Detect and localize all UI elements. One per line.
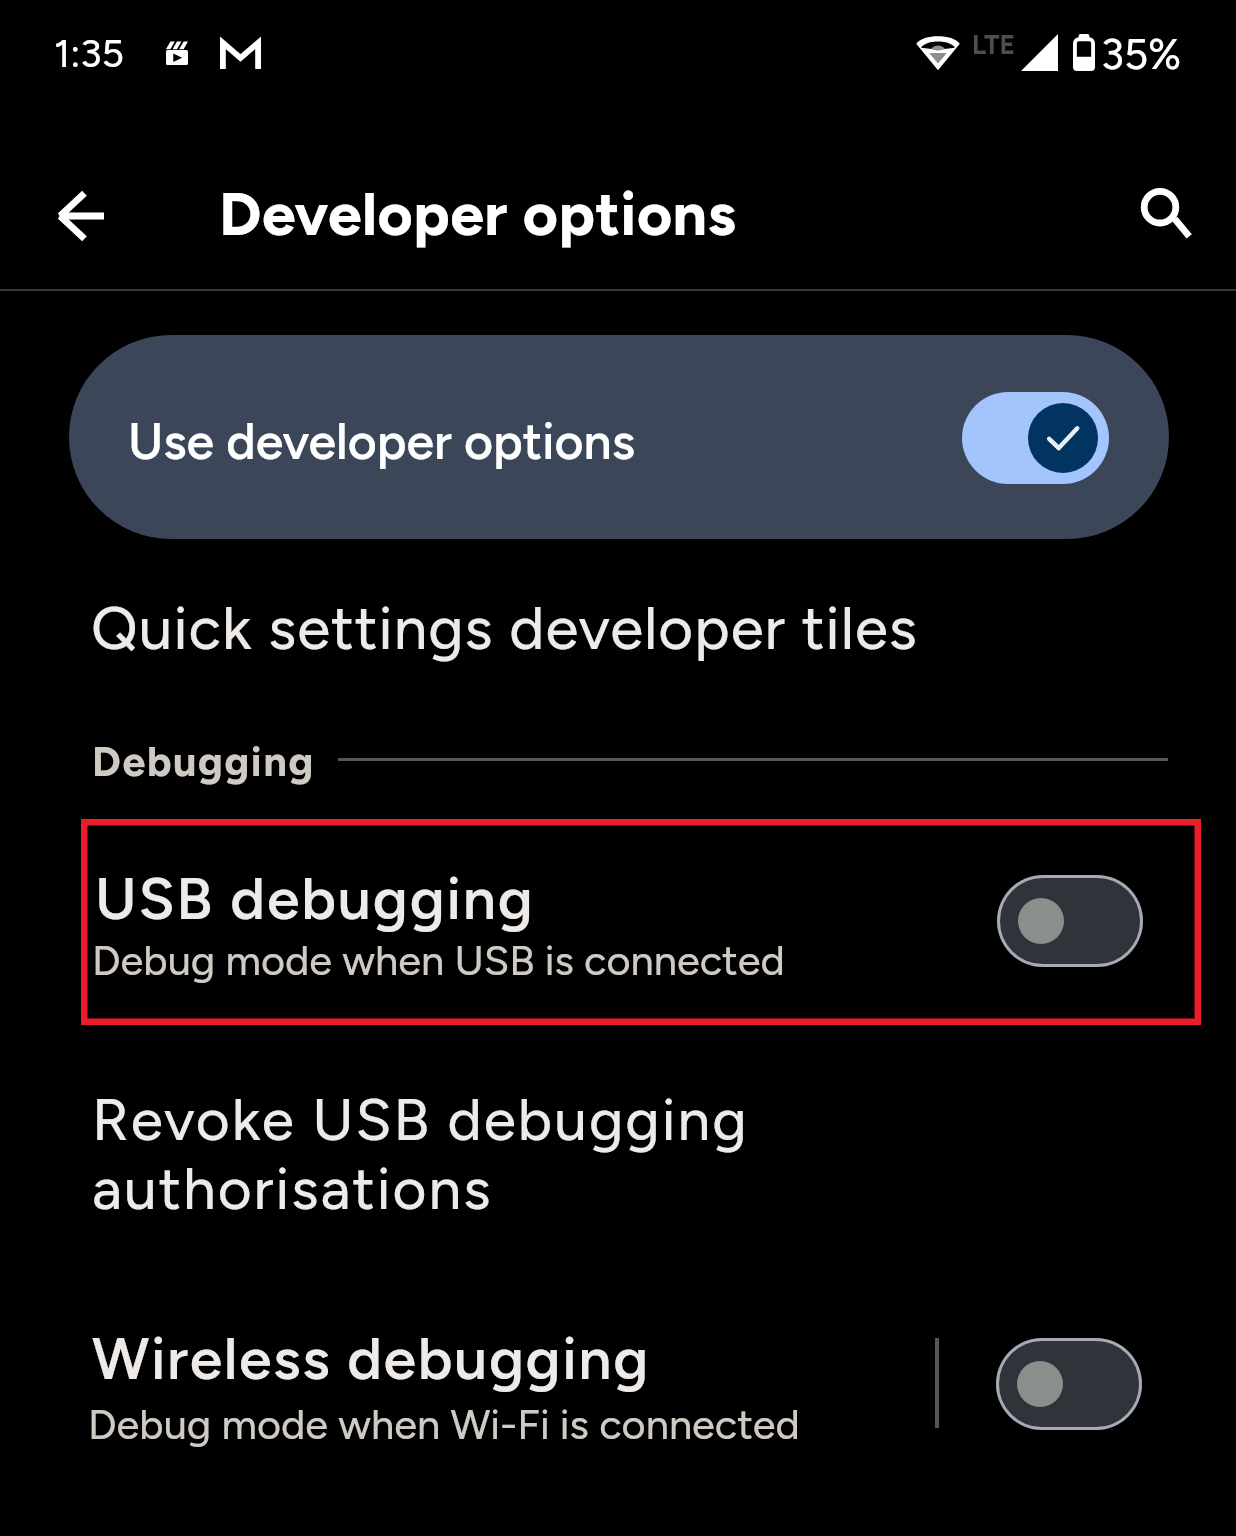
staticText: Wireless debugging: [92, 1323, 650, 1394]
button[interactable]: Search: [1116, 163, 1226, 273]
staticText: USB debugging: [95, 863, 535, 934]
button[interactable]: Toggle, off: [997, 875, 1143, 967]
button[interactable]: Revoke USB debugging authorisations: [0, 1070, 1236, 1245]
staticText: LTE: [972, 29, 1016, 61]
staticText: Debug mode when Wi-Fi is connected: [88, 1400, 800, 1450]
staticText: Debug mode when USB is connected: [92, 936, 785, 986]
staticText: Use developer options: [128, 411, 635, 471]
button[interactable]: Quick settings developer tiles: [0, 572, 1236, 668]
button[interactable]: Use developer options: [69, 335, 1169, 539]
button[interactable]: [0, 1290, 1236, 1490]
button[interactable]: [81, 819, 1201, 1025]
staticText: 35%: [1101, 29, 1182, 79]
staticText: Revoke USB debugging authorisations: [92, 1084, 749, 1224]
staticText: Debugging: [92, 737, 315, 786]
staticText: Quick settings developer tiles: [91, 592, 918, 664]
button[interactable]: Toggle, off: [996, 1338, 1142, 1430]
button[interactable]: Back: [25, 161, 135, 271]
staticText: Developer options: [219, 178, 737, 251]
staticText: 1:35: [54, 30, 124, 77]
button[interactable]: Use developer options, on: [962, 392, 1109, 484]
